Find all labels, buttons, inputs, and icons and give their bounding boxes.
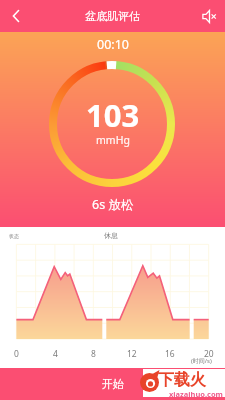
staticText: 20	[204, 348, 214, 360]
staticText: 12	[127, 348, 137, 360]
staticText: mmHg	[96, 133, 130, 147]
staticText: 6s 放松	[92, 196, 134, 213]
staticText: 盆底肌评估	[85, 9, 140, 23]
button[interactable]: Back	[0, 0, 32, 32]
staticText: (时间/s)	[191, 357, 212, 365]
staticText: 4	[53, 348, 58, 360]
staticText: 103	[86, 94, 140, 136]
button[interactable]: 开始	[0, 368, 225, 400]
staticText: 下载火	[158, 370, 206, 390]
staticText: 状态	[9, 233, 19, 239]
staticText: 16	[165, 348, 175, 360]
staticText: 休息	[104, 231, 118, 240]
staticText: 0	[14, 348, 19, 360]
staticText: 开始	[102, 377, 124, 391]
button[interactable]: Mute sound	[193, 0, 225, 32]
staticText: xiazaihuo.com	[169, 389, 223, 399]
staticText: 00:10	[97, 36, 129, 53]
staticText: 8	[91, 348, 96, 360]
